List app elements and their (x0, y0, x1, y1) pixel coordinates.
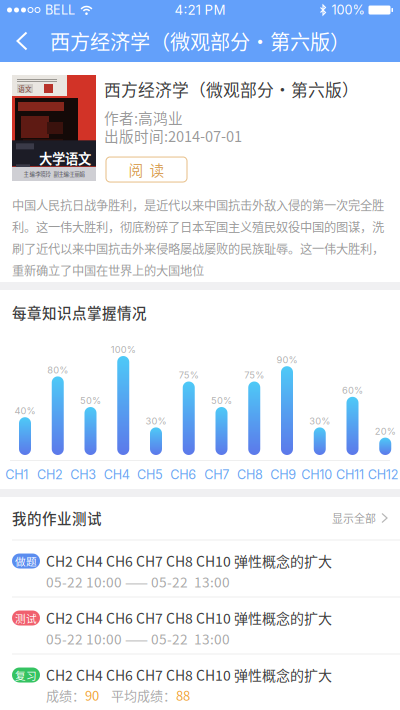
staticText: 100% (111, 344, 136, 355)
staticText: 4:21 PM (174, 2, 225, 18)
staticText: 50% (211, 395, 232, 406)
staticText: 西方经济学（微观部分・第六版） (50, 26, 350, 56)
staticText: 05-22 10:00 —— 05-22 13:00 (46, 628, 230, 648)
staticText: 20% (375, 426, 396, 437)
staticText: 出版时间:2014-07-01 (104, 125, 242, 146)
staticText: 05-22 10:00 —— 05-22 13:00 (46, 571, 230, 591)
staticText: 50% (80, 395, 101, 406)
staticText: CH5 (137, 467, 163, 482)
staticText: 75% (179, 369, 199, 381)
staticText: 复习 (15, 667, 37, 683)
staticText: CH2 CH4 CH6 CH7 CH8 CH10 弹性概念的扩大 (46, 607, 332, 628)
staticText: 90 (85, 685, 99, 704)
staticText: 测试 (15, 610, 37, 626)
button[interactable]: 显示全部 (332, 504, 400, 532)
staticText: 40% (14, 405, 35, 416)
staticText: 我的作业测试 (12, 507, 102, 528)
staticText: CH12 (368, 467, 399, 482)
staticText: 每章知识点掌握情况 (12, 302, 147, 323)
staticText: 80% (47, 364, 68, 376)
staticText: 大学语文 (39, 148, 91, 168)
staticText: 成绩： (46, 685, 85, 704)
staticText: CH2 (37, 467, 63, 482)
staticText: 75% (244, 369, 264, 381)
staticText: CH8 (237, 467, 263, 482)
staticText: 中国人民抗日战争胜利，是近代以来中国抗击外敌入侵的第一次完全胜利。这一伟大胜利，… (12, 196, 384, 279)
staticText: CH2 CH4 CH6 CH7 CH8 CH10 弹性概念的扩大 (46, 550, 332, 571)
staticText: 平均成绩： (99, 685, 176, 704)
staticText: CH7 (204, 467, 229, 482)
staticText: 西方经济学（微观部分・第六版） (104, 77, 359, 101)
staticText: 30% (145, 415, 166, 427)
button[interactable]: Back (0, 20, 44, 62)
staticText: 作者:高鸿业 (104, 107, 183, 128)
staticText: CH4 (104, 467, 130, 482)
staticText: CH10 (301, 467, 332, 482)
staticText: CH1 (5, 467, 28, 482)
button[interactable]: 测试 (0, 596, 400, 653)
staticText: 显示全部 (332, 510, 376, 526)
staticText: BELL (45, 2, 75, 18)
staticText: 主 编:李晓玲 副主编:王丽娟 (23, 170, 84, 178)
staticText: 阅 读 (128, 159, 164, 180)
staticText: CH6 (170, 467, 196, 482)
staticText: CH3 (70, 467, 96, 482)
staticText: 60% (342, 385, 363, 396)
staticText: 语文 (18, 84, 32, 93)
button[interactable]: 阅 读 (106, 157, 187, 182)
button[interactable]: 做题 (0, 539, 400, 596)
staticText: CH11 (336, 467, 364, 482)
staticText: 100% (331, 2, 364, 18)
staticText: 做题 (15, 553, 37, 569)
staticText: CH2 CH4 CH6 CH7 CH8 CH10 弹性概念的扩大 (46, 664, 332, 685)
staticText: 30% (309, 415, 330, 427)
staticText: CH9 (270, 467, 296, 482)
button[interactable]: 复习 (0, 653, 400, 710)
staticText: 88 (176, 685, 190, 704)
staticText: 90% (276, 354, 297, 365)
